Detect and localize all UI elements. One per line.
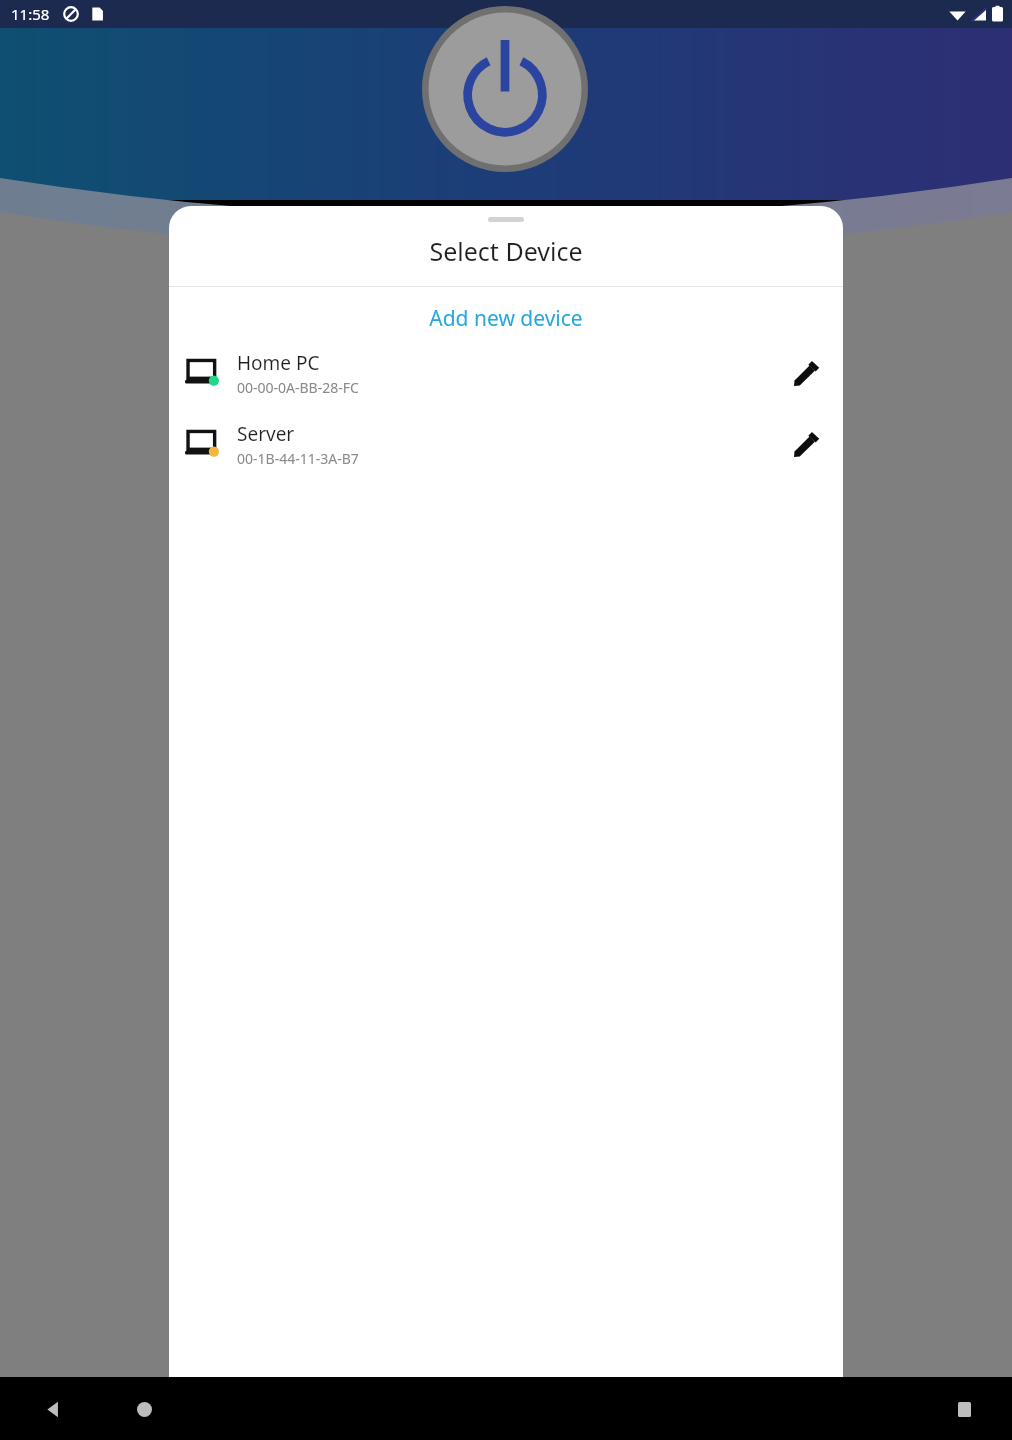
staticText: 11:58 <box>11 4 50 24</box>
button[interactable]: Add new device <box>169 287 843 349</box>
button[interactable]: Recents <box>940 1385 988 1433</box>
staticText: Add new device <box>429 304 583 333</box>
button[interactable]: Home <box>120 1385 168 1433</box>
button[interactable]: Back <box>29 1385 77 1433</box>
button[interactable]: Power <box>422 6 588 172</box>
staticText: Home PC <box>237 350 320 376</box>
staticText: 00-1B-44-11-3A-B7 <box>237 449 359 468</box>
button[interactable]: Edit Server <box>783 420 831 468</box>
button[interactable]: Edit Home PC <box>783 349 831 397</box>
staticText: 00-00-0A-BB-28-FC <box>237 378 359 397</box>
button[interactable]: Home PC <box>169 349 843 397</box>
staticText: Select Device <box>429 234 583 268</box>
staticText: Server <box>237 421 295 447</box>
button[interactable]: Server <box>169 420 843 468</box>
